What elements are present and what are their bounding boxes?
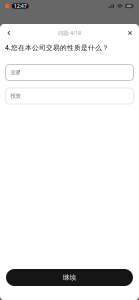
staticText: 4.您在本公司交易的性质是什么？ [5,43,109,52]
staticText: 12:47 [14,2,27,10]
button[interactable]: Close [122,25,138,41]
button[interactable]: 交易 [5,64,134,81]
staticText: 继续 [62,273,76,282]
button[interactable]: 继续 [6,269,133,286]
staticText: 交易 [10,69,20,76]
staticText: 投资 [10,93,20,99]
button[interactable]: 投资 [5,87,134,104]
button[interactable]: Back [1,25,17,41]
staticText: 问题: 4/18 [58,29,81,37]
